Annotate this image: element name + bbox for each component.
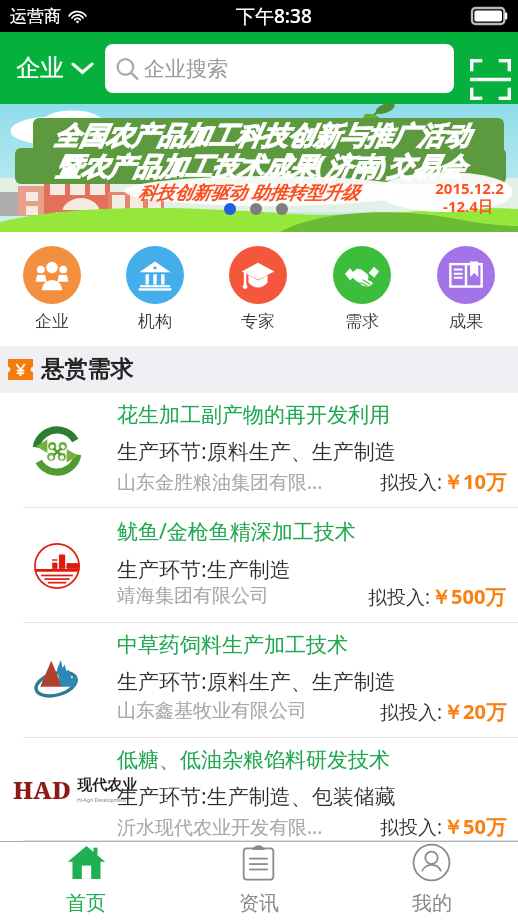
staticText: 低糖、低油杂粮馅料研发技术 bbox=[117, 747, 390, 773]
button[interactable]: 企业搜索 bbox=[105, 44, 454, 93]
staticText: 运营商 bbox=[10, 6, 61, 27]
staticText: 拟投入: bbox=[368, 584, 431, 610]
staticText: 全国农产品加工科技创新与推广活动 bbox=[53, 120, 469, 153]
staticText: HAD bbox=[13, 773, 72, 806]
staticText: 下午8:38 bbox=[236, 3, 312, 29]
staticText: 专家 bbox=[241, 311, 275, 332]
staticText: 生产环节:原料生产、生产制造 bbox=[117, 667, 396, 696]
button[interactable]: 企业 bbox=[12, 45, 96, 91]
staticText: 需求 bbox=[345, 311, 379, 332]
staticText: 拟投入: bbox=[380, 469, 443, 495]
staticText: 企业搜索 bbox=[144, 56, 228, 82]
staticText: 企业 bbox=[35, 311, 69, 332]
staticText: 山东金胜粮油集团有限... bbox=[117, 469, 323, 495]
staticText: -12.4日 bbox=[443, 196, 493, 216]
staticText: 生产环节:原料生产、生产制造 bbox=[117, 437, 396, 466]
staticText: ￥10万 bbox=[443, 468, 506, 495]
button[interactable]: 专家 bbox=[206, 240, 310, 338]
staticText: 我的 bbox=[412, 891, 452, 916]
button[interactable]: 资讯 bbox=[172, 842, 345, 920]
staticText: 拟投入: bbox=[380, 814, 443, 840]
button[interactable]: 机构 bbox=[103, 240, 206, 338]
staticText: 成果 bbox=[449, 311, 483, 332]
staticText: 现代农业 bbox=[77, 776, 137, 795]
staticText: 科技创新驱动 助推转型升级 bbox=[138, 180, 359, 205]
button[interactable]: 需求 bbox=[310, 240, 414, 338]
staticText: 生产环节:生产制造 bbox=[117, 555, 291, 584]
staticText: Hi-Agri Development bbox=[77, 797, 127, 804]
button[interactable]: 中草药饲料生产加工技术 bbox=[0, 623, 518, 738]
staticText: 机构 bbox=[138, 311, 172, 332]
staticText: ￥500万 bbox=[431, 583, 506, 610]
staticText: 悬赏需求 bbox=[41, 355, 133, 384]
button[interactable]: 花生加工副产物的再开发利用 bbox=[0, 393, 518, 508]
staticText: ￥50万 bbox=[443, 813, 506, 840]
button[interactable]: 我的 bbox=[345, 842, 518, 920]
staticText: 首页 bbox=[66, 891, 106, 916]
staticText: 山东鑫基牧业有限公司 bbox=[117, 699, 307, 723]
staticText: 拟投入: bbox=[380, 699, 443, 725]
staticText: 资讯 bbox=[239, 891, 279, 916]
staticText: 生产环节:生产制造、包装储藏 bbox=[117, 782, 396, 811]
button[interactable]: HAD bbox=[0, 738, 518, 841]
button[interactable]: 鱿鱼/金枪鱼精深加工技术 bbox=[0, 508, 518, 623]
button[interactable]: 首页 bbox=[0, 842, 172, 920]
staticText: 鱿鱼/金枪鱼精深加工技术 bbox=[117, 517, 356, 546]
staticText: 花生加工副产物的再开发利用 bbox=[117, 402, 390, 428]
button[interactable]: 成果 bbox=[414, 240, 518, 338]
staticText: ￥20万 bbox=[443, 698, 506, 725]
staticText: 2015.12.2 bbox=[435, 178, 504, 198]
button[interactable]: 企业 bbox=[0, 240, 103, 338]
staticText: 靖海集团有限公司 bbox=[117, 584, 269, 608]
staticText: 沂水现代农业开发有限... bbox=[117, 814, 323, 840]
button[interactable]: 全国农产品加工科技创新与推广活动 bbox=[0, 104, 518, 232]
staticText: 中草药饲料生产加工技术 bbox=[117, 632, 348, 658]
button[interactable]: Scan QR code bbox=[464, 53, 516, 105]
staticText: 企业 bbox=[16, 53, 64, 83]
staticText: 暨农产品加工技术成果(济南)交易会 bbox=[55, 148, 465, 184]
